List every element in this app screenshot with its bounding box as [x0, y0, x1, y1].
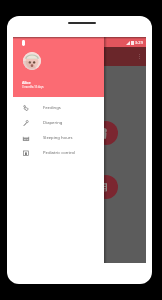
button[interactable]: Pediatric control [13, 145, 104, 160]
button[interactable]: Diapering [13, 115, 104, 130]
staticText: Diapering [43, 120, 63, 126]
button[interactable]: Feedings [13, 100, 104, 115]
staticText: Sleeping hours [43, 135, 73, 141]
staticText: Feedings [43, 105, 61, 111]
staticText: Pediatric control [43, 150, 76, 156]
button[interactable]: Sleeping hours [13, 130, 104, 145]
staticText: 3:29 [135, 40, 143, 45]
staticText: 3 months 15 days [22, 85, 44, 89]
staticText: Alice [22, 80, 31, 85]
